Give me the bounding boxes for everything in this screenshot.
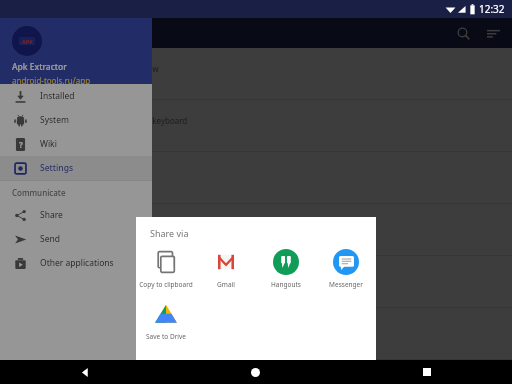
button[interactable]: Widget Preview [0, 48, 512, 100]
button[interactable]: Sort [478, 18, 508, 48]
staticText: BRO [23, 170, 36, 178]
button[interactable]: Api Demos [0, 308, 512, 360]
staticText: Apk Extractor [12, 61, 67, 73]
button[interactable]: Home [170, 360, 341, 384]
staticText: com.example.android.apis [54, 323, 154, 334]
staticText: Save to Drive [136, 332, 196, 341]
staticText: com.android.smoketest.tests [54, 271, 163, 282]
staticText: 21.11 KB [54, 74, 87, 85]
button[interactable]: Example Wallpapers [0, 204, 512, 256]
staticText: com.android.smoketest.tests [54, 259, 178, 271]
button[interactable]: Sample Soft Keyboard [0, 100, 512, 152]
button[interactable]: System [0, 108, 152, 132]
staticText: Green Bro [54, 155, 97, 167]
button[interactable]: com.android.smoketest.tests [0, 256, 512, 308]
staticText: Messenger [316, 280, 376, 289]
button[interactable]: Send [0, 227, 152, 251]
button[interactable]: Recents [341, 360, 512, 384]
staticText: System [40, 114, 69, 126]
staticText: 1.82 MB [54, 178, 85, 189]
button[interactable]: Share [0, 203, 152, 227]
button[interactable]: Back [0, 360, 170, 384]
staticText: 20.92 KB [54, 230, 87, 241]
button[interactable]: Installed (9) [0, 18, 512, 48]
staticText: com.example.android.livecubes [54, 219, 173, 230]
staticText: 7.1.1 ## 25 [54, 85, 96, 96]
staticText: ru.androidtools.greenbro [54, 167, 150, 178]
staticText: Settings [40, 162, 74, 174]
button[interactable]: Copy to clipboard [136, 247, 196, 291]
button[interactable]: Save to Drive [136, 299, 196, 343]
staticText: Send [40, 233, 60, 245]
staticText: Copy to clipboard [136, 280, 196, 289]
button[interactable]: Other applications [0, 251, 152, 275]
button[interactable]: Gmail [196, 247, 256, 291]
button[interactable]: Green [0, 152, 512, 204]
staticText: 7.1.1 ## 25 [54, 137, 96, 148]
staticText: com.android.widgetpreview [54, 63, 159, 74]
button[interactable]: Hangouts [256, 247, 316, 291]
staticText: Share [40, 209, 63, 221]
staticText: ? [19, 139, 23, 150]
staticText: 12:32 [479, 2, 505, 16]
staticText: Green [22, 163, 37, 170]
staticText: Share via [150, 227, 189, 239]
staticText: Hangouts [256, 280, 316, 289]
staticText: Gmail [196, 280, 256, 289]
button[interactable]: Search [448, 18, 478, 48]
staticText: Other applications [40, 257, 114, 269]
staticText: Communicate [12, 187, 66, 198]
staticText: com.example.android.softkeyboard [54, 115, 188, 126]
button[interactable]: ? [0, 132, 152, 156]
staticText: 1.0.5 ## 6 [54, 189, 92, 200]
staticText: Wiki [40, 138, 57, 150]
button[interactable]: Messenger [316, 247, 376, 291]
staticText: Installed (9) [12, 25, 80, 41]
staticText: Example Wallpapers [54, 207, 140, 219]
button[interactable]: Settings [0, 156, 152, 180]
staticText: APK [22, 38, 33, 45]
staticText: android-tools.ru/app [12, 75, 91, 84]
button[interactable]: Installed [0, 84, 152, 108]
staticText: 7.1.1 ## 25 [54, 241, 96, 252]
staticText: Installed [40, 90, 75, 102]
